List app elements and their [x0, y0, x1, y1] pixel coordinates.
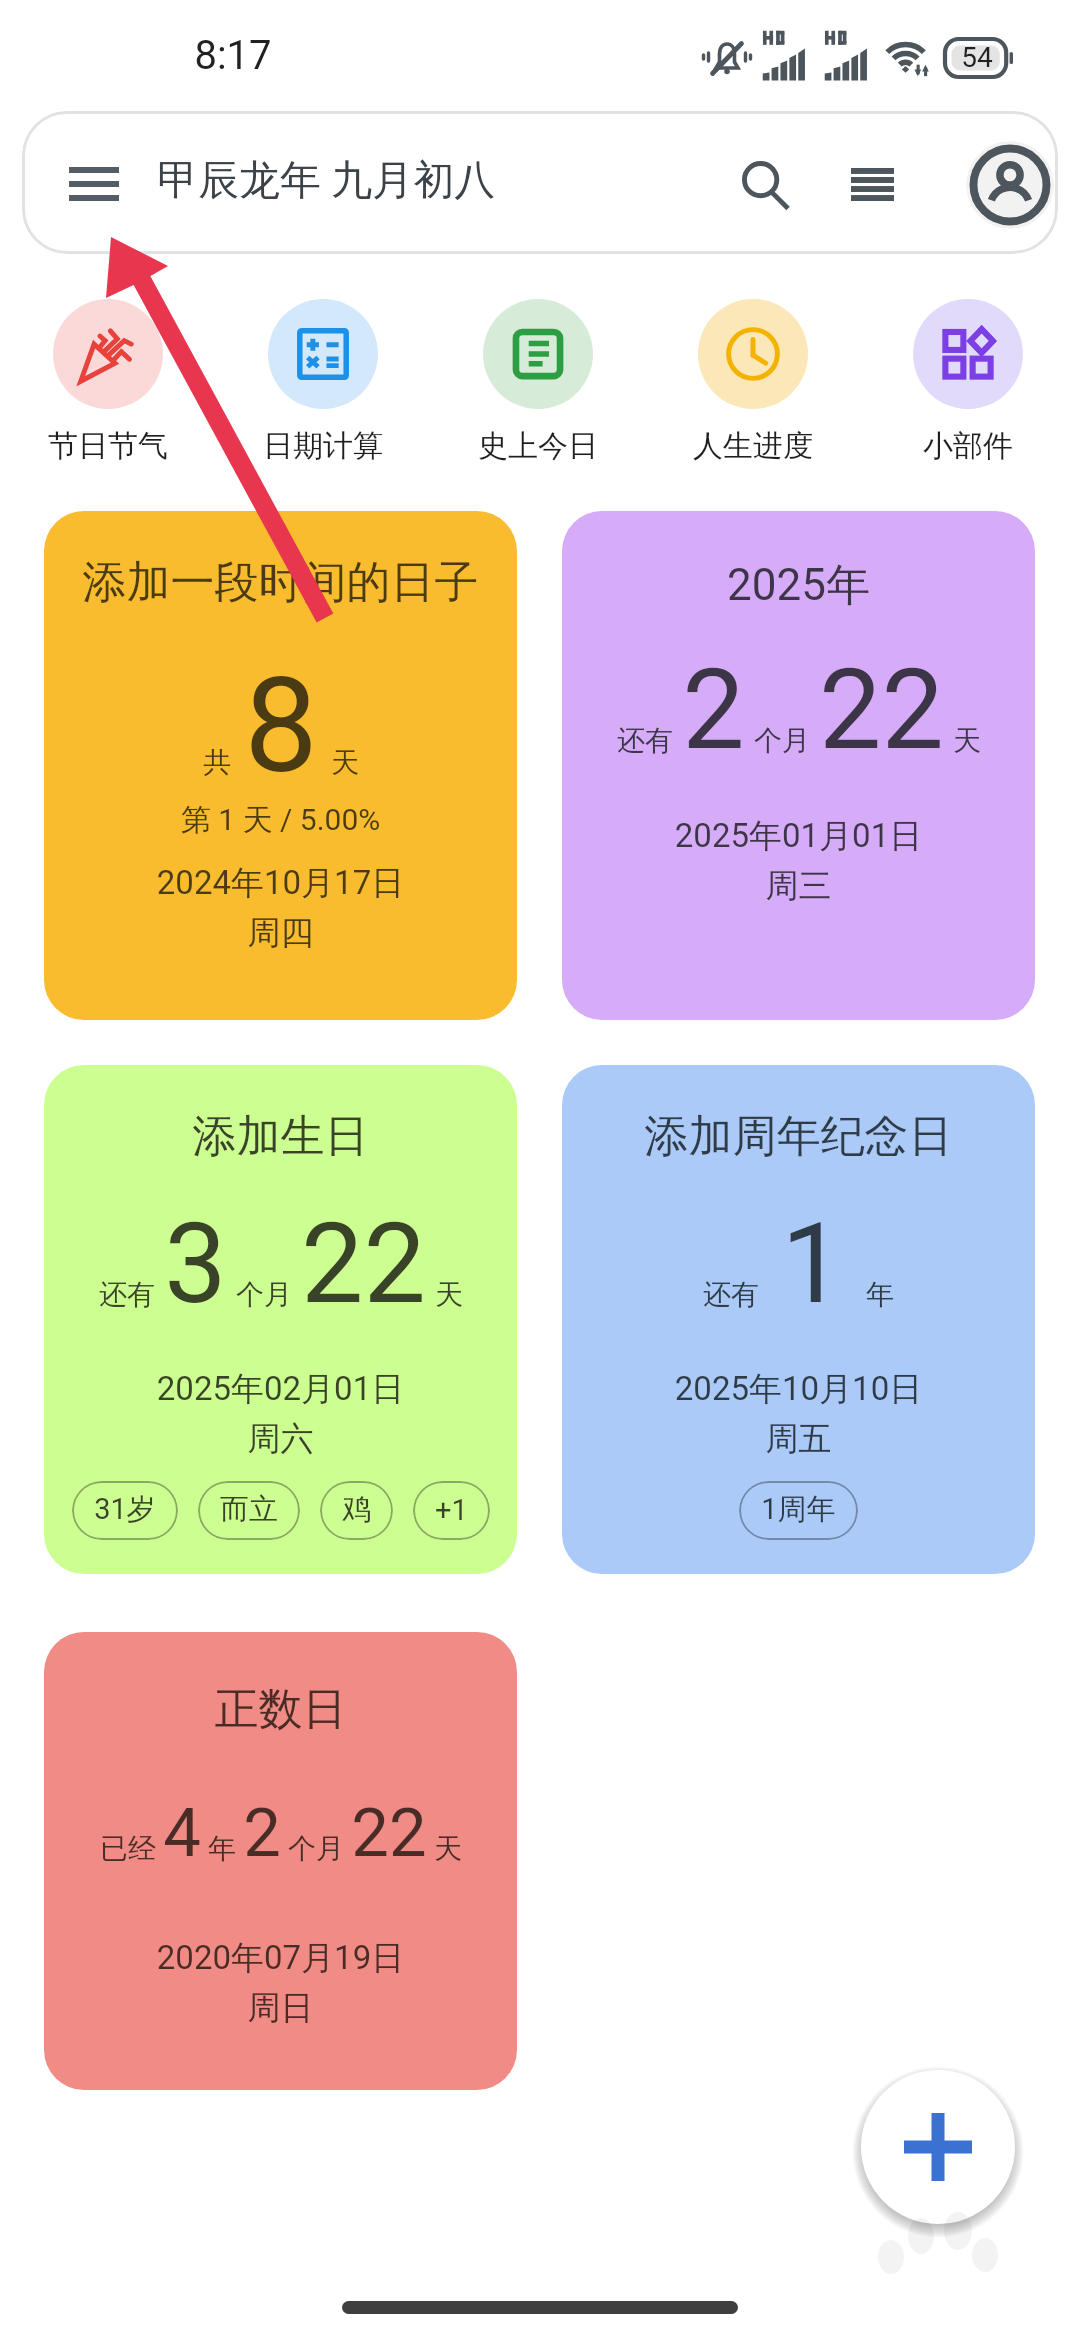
button[interactable]: 账户	[966, 141, 1054, 229]
button[interactable]: 添加	[861, 2070, 1015, 2224]
button[interactable]: 2025年	[562, 511, 1035, 1020]
staticText: 2025年01月01日	[562, 815, 1035, 857]
staticText: 3	[164, 1199, 227, 1329]
staticText: 2	[682, 645, 745, 775]
staticText: 周日	[44, 1987, 517, 2029]
staticText: 鸡	[342, 1491, 371, 1528]
staticText: 添加周年纪念日	[562, 1109, 1035, 1164]
staticText: 节日节气	[1, 427, 215, 465]
staticText: 4	[163, 1794, 201, 1873]
staticText: 22	[351, 1794, 427, 1873]
staticText: 2025年	[562, 558, 1035, 613]
button[interactable]: 31岁	[72, 1481, 178, 1540]
staticText: 2025年02月01日	[44, 1368, 517, 1410]
button[interactable]: 日期计算	[216, 299, 430, 447]
staticText: 而立	[220, 1491, 278, 1528]
staticText: 2024年10月17日	[44, 862, 517, 904]
staticText: 个月	[288, 1831, 344, 1866]
staticText: 还有	[703, 1277, 759, 1312]
staticText: +1	[435, 1493, 468, 1527]
staticText: 添加生日	[44, 1109, 517, 1164]
staticText: 周六	[44, 1418, 517, 1460]
staticText: 1周年	[761, 1491, 836, 1528]
staticText: 31岁	[94, 1491, 156, 1528]
button[interactable]: +1	[413, 1481, 490, 1540]
staticText: 年	[866, 1277, 894, 1312]
other: 列表视图	[851, 168, 894, 201]
staticText: 天	[331, 745, 359, 780]
button[interactable]: 人生进度	[646, 299, 860, 447]
staticText: 小部件	[861, 427, 1075, 465]
staticText: 2020年07月19日	[44, 1937, 517, 1979]
staticText: 史上今日	[431, 427, 645, 465]
staticText: 个月	[236, 1277, 292, 1312]
staticText: 添加一段时间的日子	[44, 555, 517, 610]
button[interactable]: 添加生日	[44, 1065, 517, 1574]
button[interactable]: 鸡	[320, 1481, 393, 1540]
staticText: 甲辰龙年 九月初八	[157, 155, 496, 207]
staticText: 第 1 天 / 5.00%	[44, 801, 517, 839]
staticText: 天	[434, 1831, 462, 1866]
button[interactable]: 正数日	[44, 1632, 517, 2090]
other: 搜索	[742, 162, 791, 207]
staticText: 1	[781, 1199, 844, 1329]
staticText: 22	[819, 645, 944, 775]
staticText: 还有	[99, 1277, 155, 1312]
staticText: 年	[208, 1831, 236, 1866]
other: 菜单	[69, 167, 119, 201]
staticText: 人生进度	[646, 427, 860, 465]
staticText: 日期计算	[216, 427, 430, 465]
staticText: 2	[243, 1794, 281, 1873]
staticText: 还有	[617, 723, 673, 758]
staticText: 天	[435, 1277, 463, 1312]
staticText: 周五	[562, 1418, 1035, 1460]
button[interactable]: 1周年	[739, 1481, 858, 1540]
staticText: 周四	[44, 912, 517, 954]
button[interactable]: 而立	[198, 1481, 300, 1540]
staticText: 8:17	[194, 32, 272, 79]
staticText: 正数日	[44, 1682, 517, 1737]
button[interactable]: 小部件	[861, 299, 1075, 447]
staticText: 共	[203, 745, 231, 780]
button[interactable]: 添加周年纪念日	[562, 1065, 1035, 1574]
button[interactable]: 菜单	[22, 111, 1058, 254]
button[interactable]: 史上今日	[431, 299, 645, 447]
staticText: 8	[244, 649, 318, 803]
staticText: 个月	[754, 723, 810, 758]
staticText: 天	[953, 723, 981, 758]
staticText: 22	[301, 1199, 426, 1329]
staticText: 54	[961, 41, 993, 74]
staticText: 已经	[100, 1831, 156, 1866]
button[interactable]: 节日节气	[1, 299, 215, 447]
staticText: 2025年10月10日	[562, 1368, 1035, 1410]
staticText: 周三	[562, 865, 1035, 907]
button[interactable]: 添加一段时间的日子	[44, 511, 517, 1020]
